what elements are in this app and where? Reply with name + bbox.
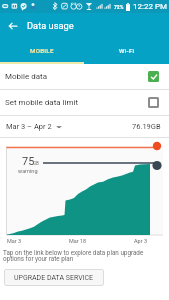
staticText: Mar 18 (69, 238, 87, 244)
staticText: Apr 3 (134, 238, 147, 244)
staticText: MOBILE (30, 47, 54, 54)
button[interactable]: Mar 3 – Apr 2 (6, 122, 62, 131)
button[interactable]: UPGRADE DATA SERVICE (4, 269, 104, 286)
staticText: Mobile data (5, 72, 47, 81)
staticText: Tap on the link below to explore data pl… (3, 249, 144, 263)
button[interactable]: Back (0, 13, 26, 38)
button[interactable]: Mobile data (0, 64, 169, 89)
staticText: 75 (22, 155, 35, 168)
staticText: UPGRADE DATA SERVICE (14, 274, 94, 282)
button[interactable]: Set mobile data limit (0, 90, 169, 115)
staticText: Wi-Fi (119, 47, 135, 54)
staticText: Mar 3 (7, 238, 22, 244)
staticText: GB (33, 161, 39, 166)
staticText: 72% (114, 4, 124, 10)
staticText: warning (18, 168, 38, 174)
staticText: 76.19GB (132, 122, 161, 131)
staticText: Data usage (27, 20, 74, 31)
staticText: Set mobile data limit (5, 98, 79, 107)
button[interactable]: Wi-Fi (84, 38, 169, 62)
staticText: 12:22 PM (133, 2, 167, 11)
staticText: Mar 3 – Apr 2 (6, 122, 52, 131)
button[interactable]: MOBILE (0, 38, 84, 62)
